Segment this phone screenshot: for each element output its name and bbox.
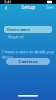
button[interactable]: Continue xyxy=(6,58,50,65)
button[interactable]: Back xyxy=(2,4,10,10)
staticText: Setup xyxy=(21,3,35,11)
staticText: Required xyxy=(8,34,23,39)
button[interactable]: Save xyxy=(46,4,54,10)
staticText: Continue xyxy=(18,59,37,64)
staticText: Save xyxy=(46,4,54,10)
staticText: Device name xyxy=(7,27,30,32)
staticText: ‹ xyxy=(4,1,7,13)
staticText: Choose a name to identify your device xyxy=(1,49,54,60)
staticText: 9:41 xyxy=(4,0,11,5)
